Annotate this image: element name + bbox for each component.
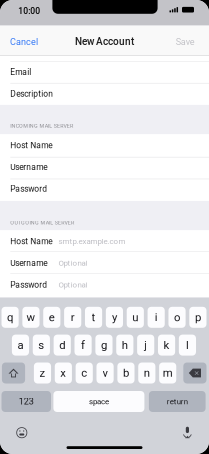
button[interactable]: a: [12, 335, 29, 356]
staticText: Host Name: [10, 140, 52, 150]
staticText: c: [81, 366, 87, 380]
button[interactable]: f: [74, 335, 92, 356]
button[interactable]: Cancel: [4, 34, 54, 50]
staticText: i: [155, 311, 158, 324]
staticText: Username: [10, 162, 47, 172]
staticText: Password: [10, 184, 47, 194]
staticText: Email: [10, 67, 31, 77]
staticText: f: [81, 338, 85, 352]
staticText: l: [186, 338, 189, 352]
button[interactable]: q: [1, 307, 19, 328]
button[interactable]: t: [85, 307, 102, 328]
button[interactable]: Dictation: [182, 426, 192, 439]
button[interactable]: 123: [1, 391, 51, 412]
button[interactable]: i: [148, 307, 165, 328]
staticText: New Account: [75, 36, 134, 47]
button[interactable]: b: [117, 362, 134, 383]
button[interactable]: space: [53, 391, 144, 412]
staticText: p: [195, 311, 201, 324]
staticText: Optional: [58, 280, 87, 289]
button[interactable]: m: [159, 362, 176, 383]
button[interactable]: e: [43, 307, 60, 328]
staticText: k: [164, 338, 170, 352]
staticText: g: [101, 338, 107, 352]
button[interactable]: k: [158, 335, 175, 356]
staticText: 123: [19, 396, 34, 407]
button[interactable]: w: [22, 307, 39, 328]
staticText: Optional: [58, 258, 87, 268]
button[interactable]: x: [55, 362, 72, 383]
staticText: 10:00: [18, 6, 40, 16]
button[interactable]: Save: [155, 34, 205, 50]
staticText: a: [17, 338, 23, 352]
staticText: b: [123, 366, 129, 380]
staticText: e: [49, 311, 55, 324]
staticText: z: [39, 366, 45, 380]
staticText: m: [163, 366, 173, 380]
staticText: Save: [176, 37, 195, 47]
button[interactable]: d: [54, 335, 71, 356]
button[interactable]: j: [137, 335, 154, 356]
staticText: smtp.example.com: [58, 237, 125, 246]
staticText: o: [174, 311, 180, 324]
button[interactable]: u: [127, 307, 144, 328]
staticText: h: [122, 338, 128, 352]
button[interactable]: g: [95, 335, 112, 356]
staticText: n: [144, 366, 150, 380]
staticText: y: [112, 311, 117, 324]
staticText: v: [103, 366, 108, 380]
staticText: q: [7, 311, 13, 324]
staticText: Password: [10, 280, 47, 290]
staticText: Username: [10, 258, 47, 268]
button[interactable]: v: [96, 362, 114, 383]
staticText: Description: [10, 89, 53, 99]
staticText: INCOMING MAIL SERVER: [10, 123, 73, 129]
button[interactable]: Shift: [2, 362, 25, 383]
button[interactable]: s: [33, 335, 50, 356]
staticText: space: [89, 397, 109, 406]
button[interactable]: c: [76, 362, 93, 383]
staticText: x: [60, 366, 66, 380]
staticText: Host Name: [10, 236, 52, 246]
staticText: OUTGOING MAIL SERVER: [10, 220, 74, 226]
button[interactable]: h: [116, 335, 133, 356]
button[interactable]: return: [149, 391, 206, 412]
button[interactable]: y: [106, 307, 123, 328]
staticText: r: [71, 311, 75, 324]
button[interactable]: r: [64, 307, 81, 328]
button[interactable]: Delete: [183, 362, 206, 383]
button[interactable]: z: [34, 362, 51, 383]
button[interactable]: p: [189, 307, 206, 328]
button[interactable]: Emoji: [16, 427, 27, 438]
button[interactable]: n: [138, 362, 155, 383]
staticText: u: [132, 311, 138, 324]
staticText: s: [38, 338, 44, 352]
button[interactable]: l: [179, 335, 196, 356]
staticText: t: [92, 311, 96, 324]
staticText: j: [144, 338, 147, 352]
button[interactable]: o: [168, 307, 186, 328]
staticText: Cancel: [10, 37, 38, 47]
staticText: return: [167, 397, 188, 406]
staticText: w: [26, 311, 35, 324]
staticText: d: [59, 338, 65, 352]
